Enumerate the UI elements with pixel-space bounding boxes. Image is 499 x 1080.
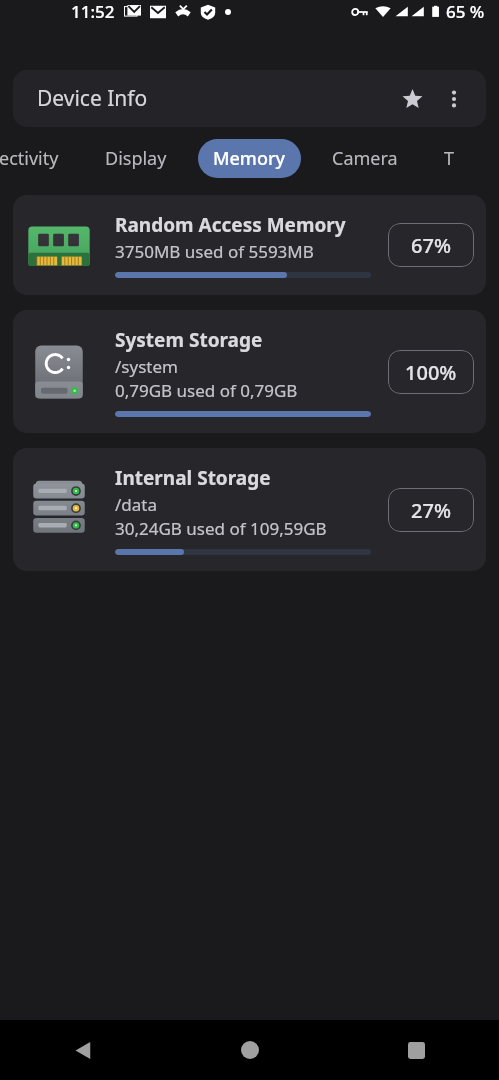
- button[interactable]: ectivity: [0, 139, 74, 178]
- staticText: 27%: [411, 497, 451, 524]
- button[interactable]: Display: [90, 139, 182, 178]
- staticText: 30,24GB used of 109,59GB: [115, 517, 327, 540]
- staticText: Display: [105, 146, 167, 171]
- staticText: /data: [115, 493, 157, 516]
- button[interactable]: Internal Storage: [13, 448, 486, 571]
- button[interactable]: Random Access Memory: [13, 195, 486, 295]
- staticText: Memory: [213, 146, 286, 171]
- button[interactable]: Camera: [317, 139, 413, 178]
- staticText: /system: [115, 355, 178, 378]
- button[interactable]: Memory: [198, 139, 301, 178]
- button[interactable]: Thermal: [429, 139, 467, 178]
- staticText: ectivity: [0, 146, 59, 171]
- button[interactable]: 67%: [388, 223, 474, 267]
- staticText: 0,79GB used of 0,79GB: [115, 379, 298, 402]
- staticText: Random Access Memory: [115, 212, 346, 238]
- staticText: 65 %: [446, 0, 485, 23]
- button[interactable]: 100%: [388, 350, 474, 394]
- staticText: Thermal: [444, 146, 452, 171]
- button[interactable]: 27%: [388, 488, 474, 532]
- staticText: Camera: [332, 146, 398, 171]
- button[interactable]: Home: [167, 1020, 333, 1080]
- staticText: 100%: [405, 359, 457, 386]
- staticText: 67%: [411, 232, 451, 259]
- staticText: Device Info: [37, 84, 148, 113]
- button[interactable]: Back: [0, 1020, 167, 1080]
- staticText: System Storage: [115, 327, 263, 353]
- staticText: 3750MB used of 5593MB: [115, 240, 314, 263]
- staticText: Internal Storage: [115, 465, 271, 491]
- staticText: 11:52: [71, 0, 115, 23]
- button[interactable]: Favorite: [390, 77, 434, 121]
- button[interactable]: System Storage: [13, 310, 486, 433]
- button[interactable]: More options: [434, 79, 474, 119]
- button[interactable]: Recent apps: [333, 1020, 499, 1080]
